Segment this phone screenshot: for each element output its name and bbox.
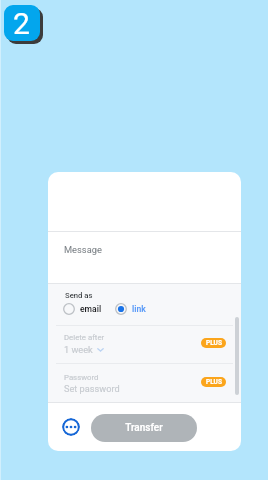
staticText: Set password — [64, 383, 120, 394]
staticText: PLUS — [206, 339, 222, 347]
staticText: Delete after — [64, 333, 105, 342]
staticText: PLUS — [206, 378, 222, 386]
button[interactable]: link — [115, 303, 146, 315]
staticText: Password — [64, 373, 99, 382]
staticText: Message — [64, 244, 102, 255]
button[interactable]: PLUS — [201, 377, 226, 387]
staticText: Transfer — [125, 422, 163, 434]
staticText: Send as — [65, 291, 93, 300]
button[interactable]: PLUS — [201, 338, 226, 348]
button[interactable]: Step 2 — [4, 5, 40, 41]
staticText: email — [80, 304, 102, 314]
staticText: 2 — [13, 6, 30, 41]
button[interactable]: email — [63, 303, 102, 315]
staticText: link — [132, 304, 146, 314]
staticText: 1 week — [64, 344, 93, 355]
button[interactable]: Transfer — [91, 414, 197, 442]
button[interactable]: Message — [48, 232, 241, 283]
button[interactable]: More options — [62, 418, 80, 436]
